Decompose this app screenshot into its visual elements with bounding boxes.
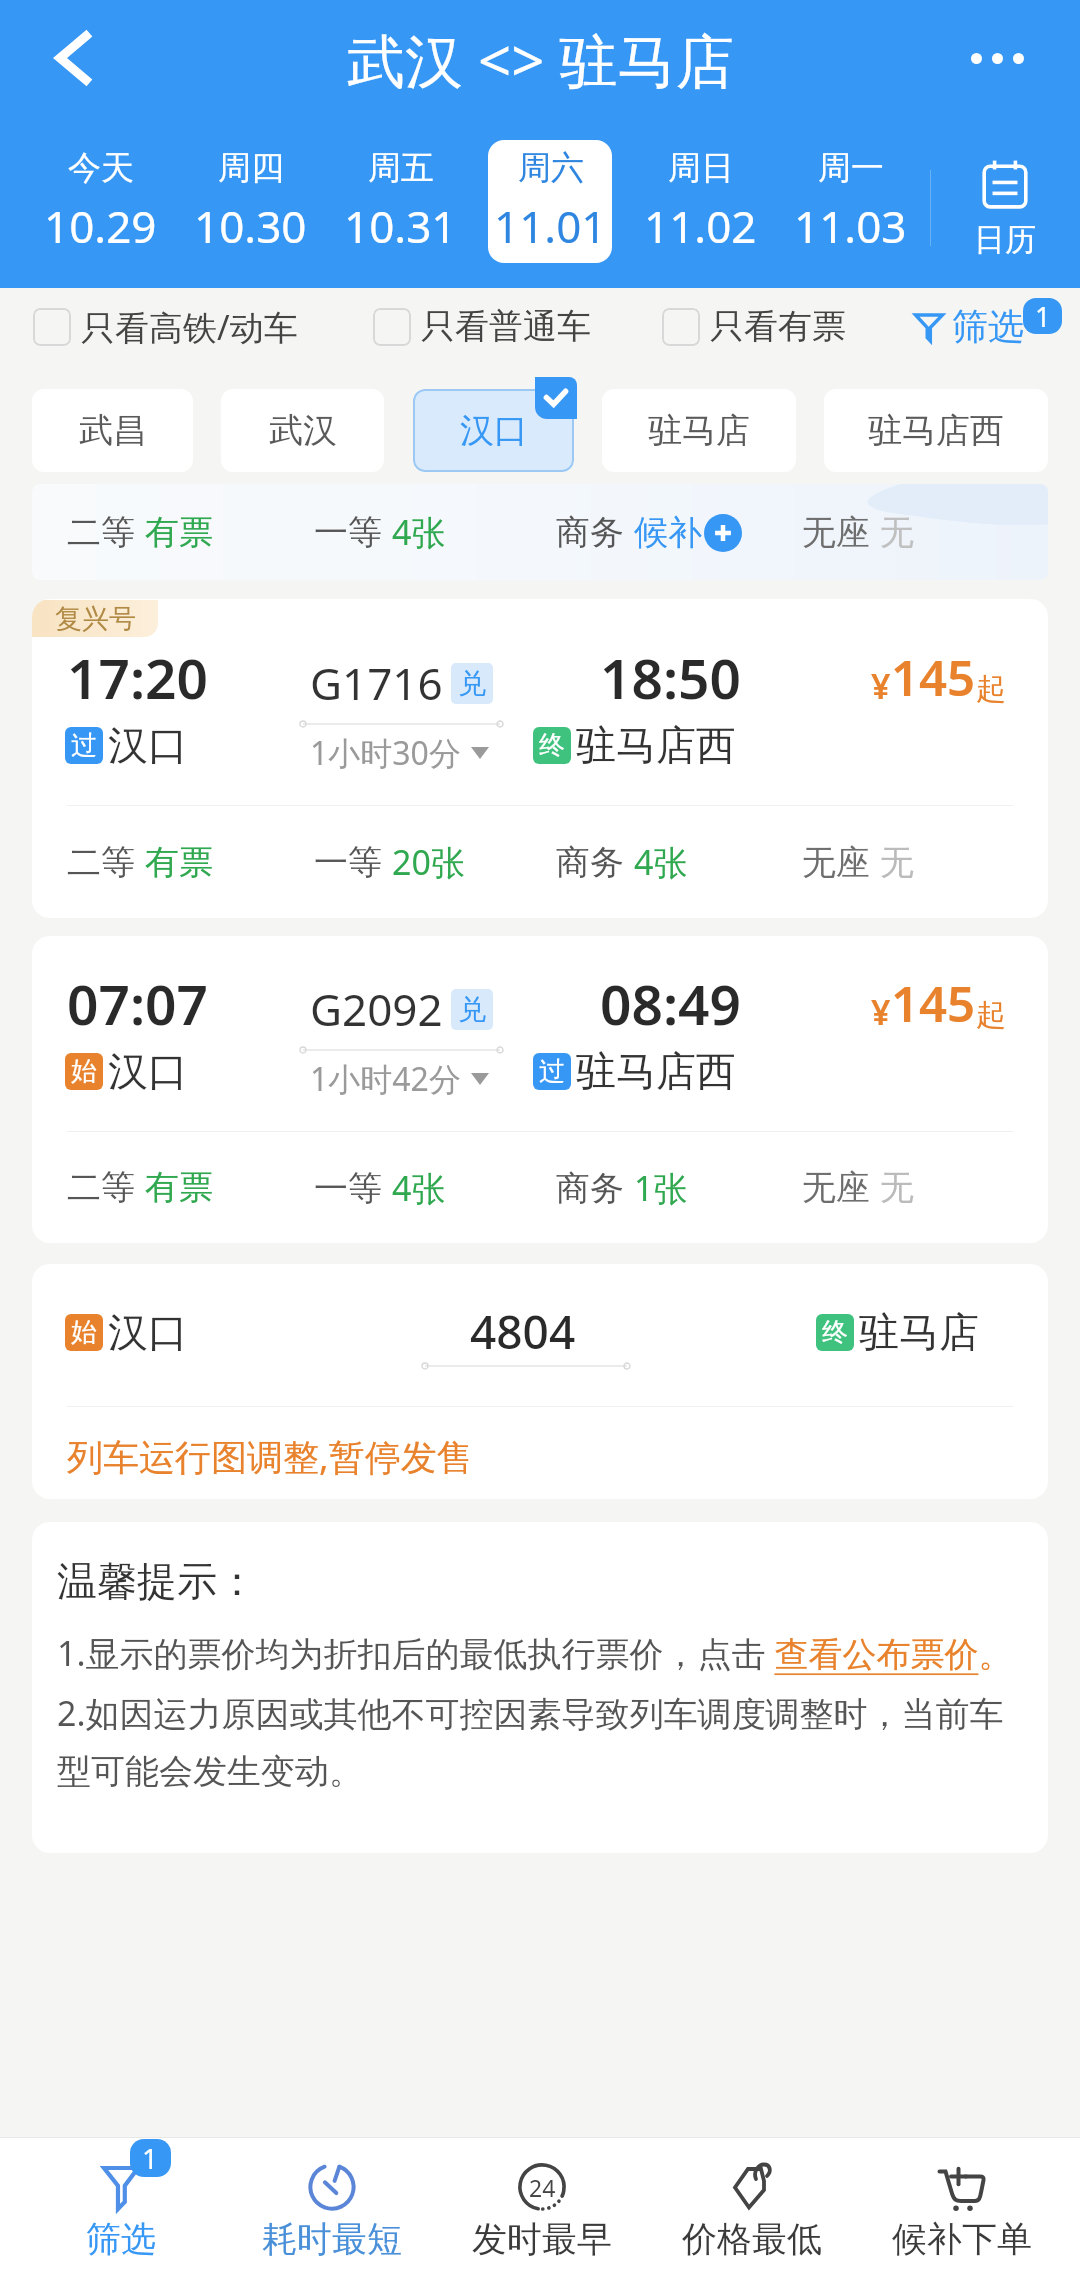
button[interactable]: 今天 <box>38 140 162 263</box>
button[interactable]: 武汉 <box>221 389 384 472</box>
staticText: 过 <box>71 729 97 762</box>
staticText: 周六 <box>518 147 584 189</box>
staticText: 二等 <box>67 841 135 884</box>
button[interactable]: 周四 <box>188 140 312 263</box>
staticText: 武汉 <box>269 409 337 452</box>
staticText: 筛选 <box>952 304 1024 349</box>
button[interactable]: 复兴号 <box>32 599 1048 918</box>
staticText: 过 <box>539 1055 565 1088</box>
staticText: 无座 <box>802 841 870 884</box>
staticText: 终 <box>539 729 565 762</box>
staticText: 兑 <box>458 992 486 1027</box>
staticText: 1小时42分 <box>310 1057 461 1101</box>
staticText: 起 <box>976 996 1006 1034</box>
staticText: 只看普通车 <box>421 305 591 348</box>
button[interactable]: 驻马店 <box>602 389 796 472</box>
staticText: 1小时30分 <box>310 731 461 775</box>
staticText: 始 <box>71 1316 97 1349</box>
staticText: 商务 <box>556 511 624 554</box>
staticText: 10.30 <box>194 196 307 256</box>
staticText: 无座 <box>802 511 870 554</box>
button[interactable]: 07:07 <box>32 936 1048 1243</box>
button[interactable]: 只看普通车 <box>369 295 595 358</box>
staticText: 1.显示的票价均为折扣后的最低执行票价，点击 查看公布票价。 2.如因运力原因或… <box>57 1630 1015 1793</box>
staticText: 二等 <box>67 511 135 554</box>
staticText: 一等 <box>314 841 382 884</box>
staticText: 终 <box>822 1316 848 1349</box>
button[interactable]: 日历 <box>930 128 1080 288</box>
button[interactable]: 汉口 <box>413 389 574 472</box>
staticText: 汉口 <box>108 1307 188 1357</box>
button[interactable]: 候补下单 <box>857 2138 1067 2278</box>
staticText: 07:07 <box>67 966 209 1041</box>
button[interactable]: 24 <box>437 2138 647 2278</box>
staticText: 始 <box>71 1055 97 1088</box>
staticText: 耗时最短 <box>262 2217 402 2261</box>
staticText: 无座 <box>802 1166 870 1209</box>
staticText: 汉口 <box>460 409 528 452</box>
staticText: 145 <box>891 970 976 1037</box>
staticText: 无 <box>880 1166 914 1209</box>
staticText: 汉口 <box>108 720 188 770</box>
button[interactable]: 周日 <box>638 140 762 263</box>
staticText: 无 <box>880 841 914 884</box>
staticText: 10.31 <box>344 196 457 256</box>
staticText: ¥ <box>871 663 891 709</box>
staticText: 4张 <box>392 509 446 555</box>
staticText: 候补 <box>634 511 702 554</box>
staticText: 温馨提示： <box>57 1556 257 1606</box>
staticText: 08:49 <box>600 966 742 1041</box>
staticText: 18:50 <box>600 640 742 715</box>
button[interactable]: 1 <box>15 2138 226 2278</box>
staticText: G1716 <box>310 653 443 713</box>
staticText: 145 <box>891 644 976 711</box>
staticText: 汉口 <box>108 1046 188 1096</box>
staticText: 列车运行图调整,暂停发售 <box>67 1432 473 1481</box>
button[interactable]: 只看高铁/动车 <box>29 294 302 360</box>
staticText: 价格最低 <box>682 2217 822 2261</box>
staticText: 驻马店西 <box>576 1046 736 1096</box>
staticText: 候补下单 <box>892 2217 1032 2261</box>
staticText: 1张 <box>634 1165 688 1211</box>
staticText: 无 <box>880 511 914 554</box>
staticText: 1 <box>142 2139 159 2177</box>
button[interactable]: 武昌 <box>32 389 193 472</box>
button[interactable]: 价格最低 <box>647 2138 857 2278</box>
staticText: ¥ <box>871 989 891 1035</box>
staticText: G2092 <box>310 979 443 1039</box>
staticText: 商务 <box>556 841 624 884</box>
staticText: 4804 <box>470 1300 576 1363</box>
staticText: 4张 <box>634 839 688 885</box>
button[interactable]: 周五 <box>338 140 462 263</box>
button[interactable]: 只看有票 <box>658 295 850 358</box>
staticText: 17:20 <box>67 640 209 715</box>
staticText: 驻马店 <box>859 1307 979 1357</box>
staticText: 周一 <box>818 147 884 189</box>
button[interactable]: 周一 <box>788 140 912 263</box>
staticText: 驻马店 <box>648 409 750 452</box>
button[interactable]: 筛选 <box>914 294 1024 359</box>
staticText: 今天 <box>68 147 134 189</box>
staticText: 有票 <box>145 841 213 884</box>
staticText: 有票 <box>145 1166 213 1209</box>
staticText: 一等 <box>314 1167 382 1210</box>
staticText: 发时最早 <box>472 2217 612 2261</box>
staticText: 兑 <box>458 666 486 701</box>
staticText: 只看高铁/动车 <box>81 304 298 350</box>
button[interactable]: 始 <box>32 1264 1048 1499</box>
button[interactable]: More options <box>952 13 1042 103</box>
staticText: 20张 <box>392 839 465 885</box>
staticText: 一等 <box>314 511 382 554</box>
staticText: 武昌 <box>79 409 147 452</box>
staticText: 11.02 <box>644 196 757 256</box>
button[interactable]: 耗时最短 <box>226 2138 437 2278</box>
button[interactable]: Back <box>28 13 118 103</box>
staticText: 筛选 <box>86 2217 156 2261</box>
button[interactable]: 驻马店西 <box>824 389 1048 472</box>
staticText: 周四 <box>218 147 284 189</box>
staticText: 商务 <box>556 1167 624 1210</box>
staticText: 复兴号 <box>55 602 136 636</box>
staticText: 日历 <box>974 220 1036 259</box>
button[interactable]: 周六 <box>488 140 612 263</box>
staticText: 武汉 <> 驻马店 <box>347 20 734 99</box>
